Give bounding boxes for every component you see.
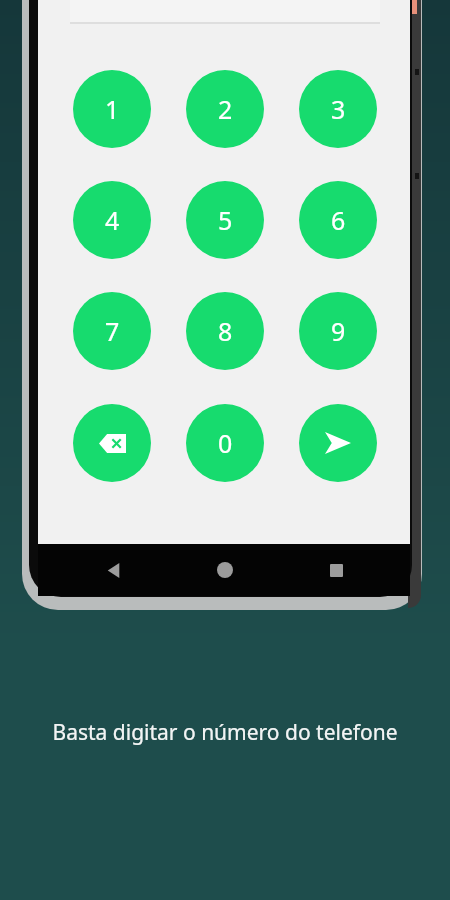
- button[interactable]: 9: [299, 292, 377, 370]
- button[interactable]: 8: [186, 292, 264, 370]
- button[interactable]: 1: [73, 70, 151, 148]
- button[interactable]: 3: [299, 70, 377, 148]
- staticText: 7: [105, 314, 120, 348]
- staticText: 9: [331, 314, 346, 348]
- staticText: 0: [218, 426, 233, 460]
- staticText: 3: [331, 92, 346, 126]
- button[interactable]: Home: [209, 554, 241, 586]
- button[interactable]: 5: [186, 181, 264, 259]
- button[interactable]: 4: [73, 181, 151, 259]
- button[interactable]: 2: [186, 70, 264, 148]
- staticText: 2: [218, 92, 233, 126]
- button[interactable]: Back: [98, 554, 130, 586]
- staticText: 6: [331, 203, 346, 237]
- button[interactable]: 6: [299, 181, 377, 259]
- button[interactable]: 7: [73, 292, 151, 370]
- staticText: 8: [218, 314, 233, 348]
- button[interactable]: Recent apps: [320, 554, 352, 586]
- staticText: Basta digitar o número do telefone: [52, 718, 398, 747]
- button[interactable]: Send: [299, 404, 377, 482]
- staticText: 4: [105, 203, 120, 237]
- staticText: 1: [105, 92, 120, 126]
- button[interactable]: Backspace: [73, 404, 151, 482]
- button[interactable]: 0: [186, 404, 264, 482]
- staticText: 5: [218, 203, 233, 237]
